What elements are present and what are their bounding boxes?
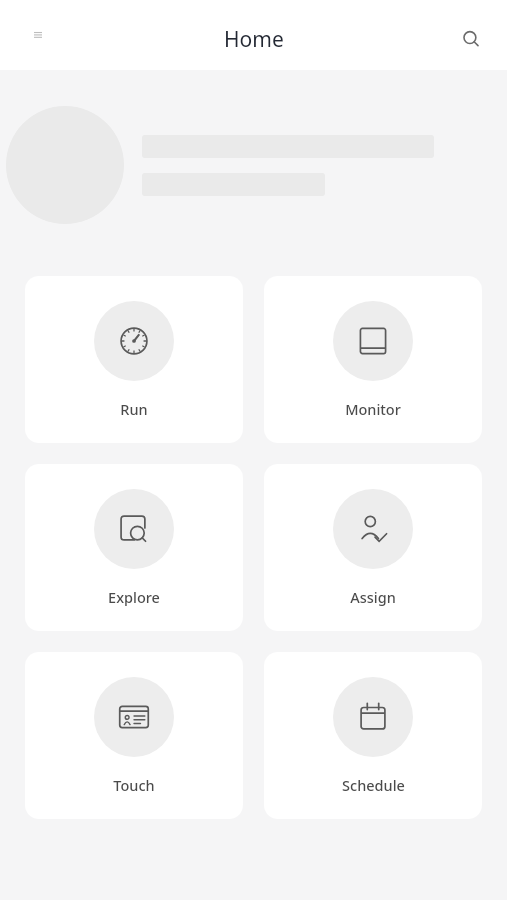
staticText: Monitor bbox=[345, 399, 401, 419]
staticText: Schedule bbox=[342, 775, 405, 795]
button[interactable]: Menu bbox=[22, 19, 54, 51]
staticText: Touch bbox=[113, 775, 155, 795]
staticText: Assign bbox=[350, 587, 396, 607]
button[interactable]: Explore bbox=[25, 464, 243, 631]
staticText: Run bbox=[120, 399, 148, 419]
button[interactable]: Assign bbox=[264, 464, 482, 631]
button[interactable]: Monitor bbox=[264, 276, 482, 443]
button[interactable]: Schedule bbox=[264, 652, 482, 819]
button[interactable]: Run bbox=[25, 276, 243, 443]
button[interactable]: Touch bbox=[25, 652, 243, 819]
staticText: Home bbox=[224, 25, 284, 54]
staticText: Explore bbox=[108, 587, 160, 607]
button[interactable]: Search bbox=[451, 19, 491, 59]
